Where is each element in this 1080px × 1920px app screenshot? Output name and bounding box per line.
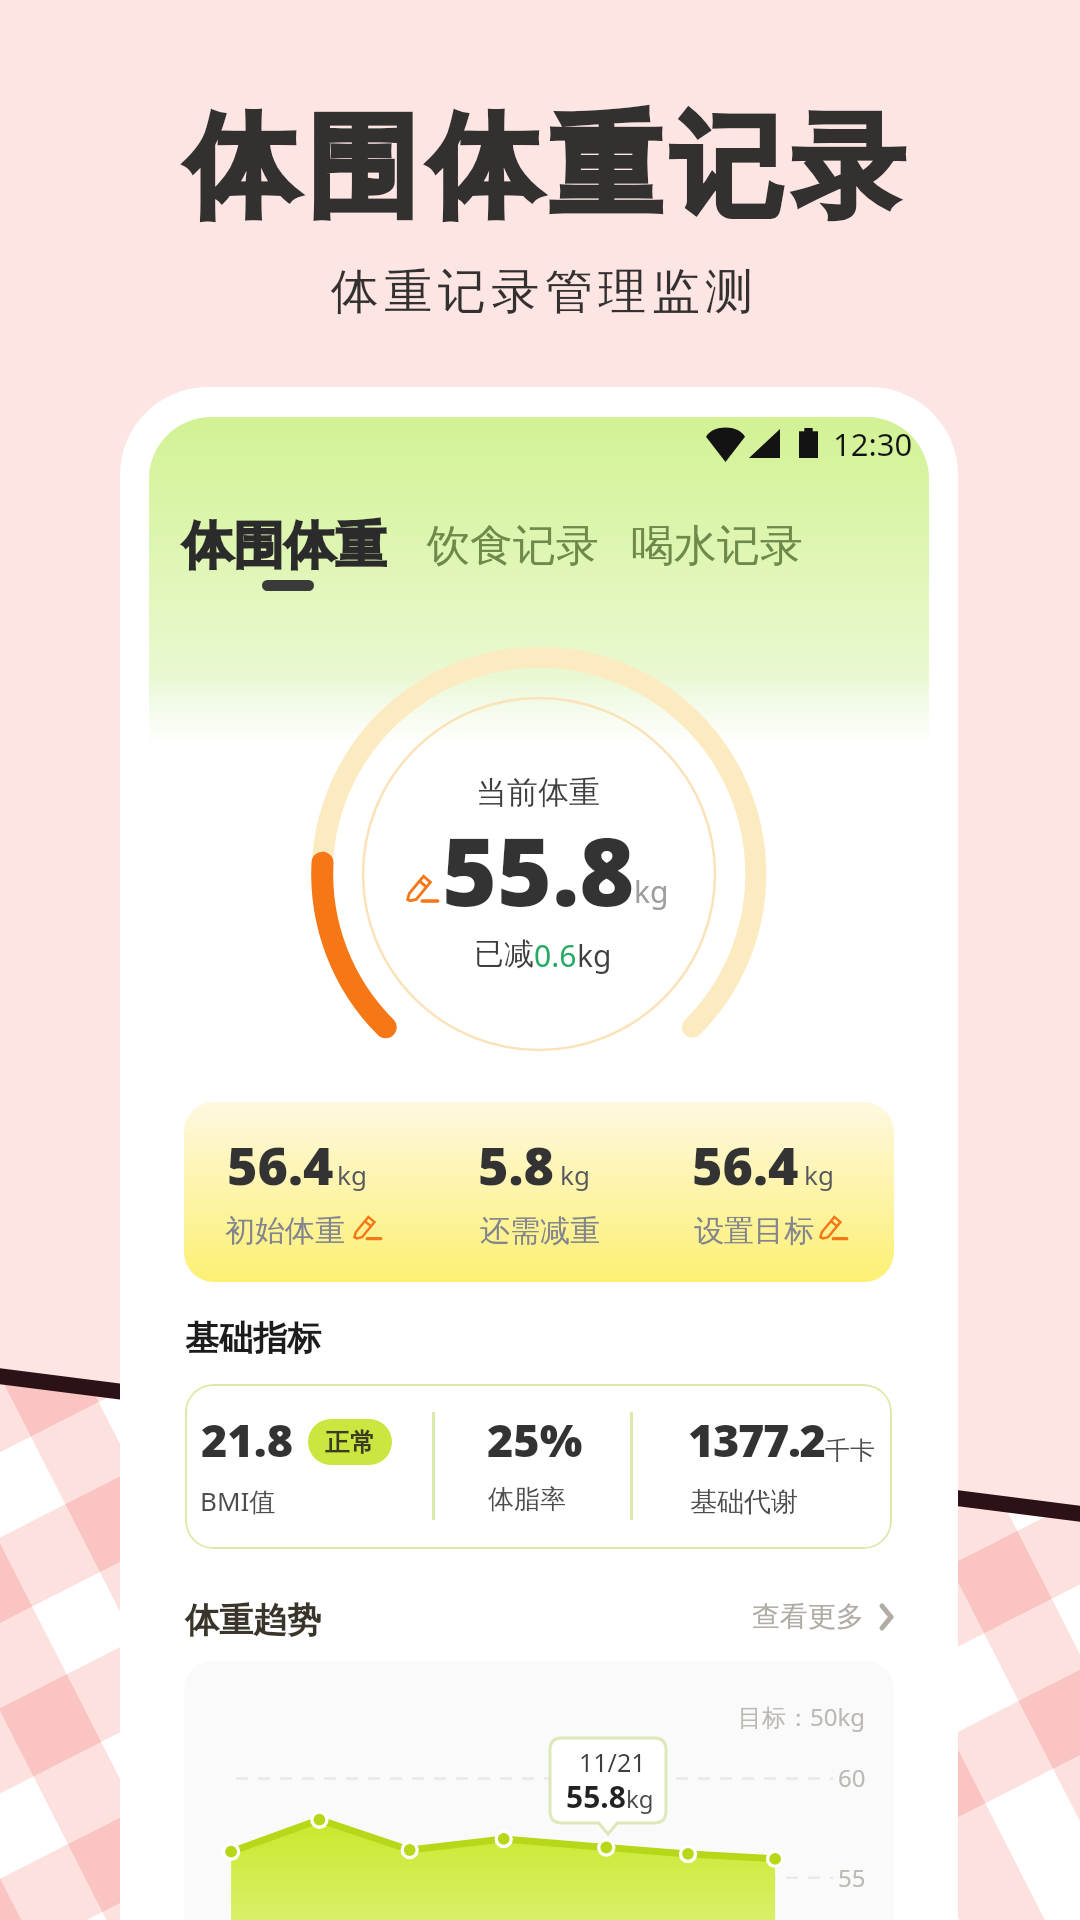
button[interactable] (184, 1102, 894, 1282)
staticText: kg (634, 871, 669, 912)
button[interactable]: 喝水记录 (631, 519, 803, 573)
staticText: 56.4 (227, 1129, 334, 1200)
staticText: 目标：50kg (738, 1700, 866, 1733)
staticText: 1377.2 (688, 1409, 825, 1470)
staticText: 喝水记录 (631, 519, 803, 573)
button[interactable]: 目标：50kg (184, 1661, 894, 1920)
staticText: 基础代谢 (690, 1485, 798, 1519)
other: Edit (819, 1214, 848, 1243)
staticText: 11/21 (579, 1745, 646, 1779)
staticText: 60 (838, 1761, 866, 1794)
button[interactable]: 体围体重 (182, 514, 386, 578)
staticText: 体围体重 (182, 514, 386, 578)
staticText: BMI值 (200, 1483, 276, 1519)
staticText: 体重记录管理监测 (328, 262, 756, 322)
staticText: 55.8 (442, 806, 635, 934)
staticText: 体脂率 (488, 1483, 566, 1516)
staticText: 千卡 (825, 1435, 875, 1466)
staticText: kg (804, 1157, 834, 1192)
button[interactable]: 查看更多 (752, 1599, 894, 1634)
staticText: 5.8 (478, 1129, 554, 1200)
staticText: 55.8 (566, 1776, 626, 1817)
staticText: 基础指标 (185, 1317, 321, 1360)
other: Edit (353, 1214, 382, 1243)
staticText: kg (577, 935, 612, 976)
staticText: 饮食记录 (427, 519, 599, 573)
staticText: 当前体重 (476, 773, 600, 812)
staticText: 查看更多 (752, 1599, 864, 1634)
staticText: 已减 (474, 935, 534, 973)
staticText: 设置目标 (694, 1212, 814, 1250)
staticText: 12:30 (833, 423, 913, 465)
staticText: 56.4 (692, 1129, 799, 1200)
staticText: 25% (487, 1409, 583, 1470)
staticText: kg (337, 1157, 367, 1192)
button[interactable] (185, 1384, 892, 1549)
staticText: 体重趋势 (185, 1599, 321, 1642)
other: Edit (406, 873, 439, 906)
staticText: kg (560, 1157, 590, 1192)
button[interactable]: Edit current weight (399, 797, 684, 915)
staticText: 0.6 (534, 935, 577, 976)
button[interactable]: 饮食记录 (427, 519, 599, 573)
staticText: 初始体重 (225, 1212, 345, 1250)
staticText: 正常 (325, 1427, 375, 1458)
staticText: 55 (838, 1861, 866, 1894)
staticText: 21.8 (201, 1409, 294, 1470)
staticText: 体围体重记录 (185, 97, 914, 238)
staticText: kg (626, 1782, 654, 1815)
staticText: 还需减重 (480, 1212, 600, 1250)
